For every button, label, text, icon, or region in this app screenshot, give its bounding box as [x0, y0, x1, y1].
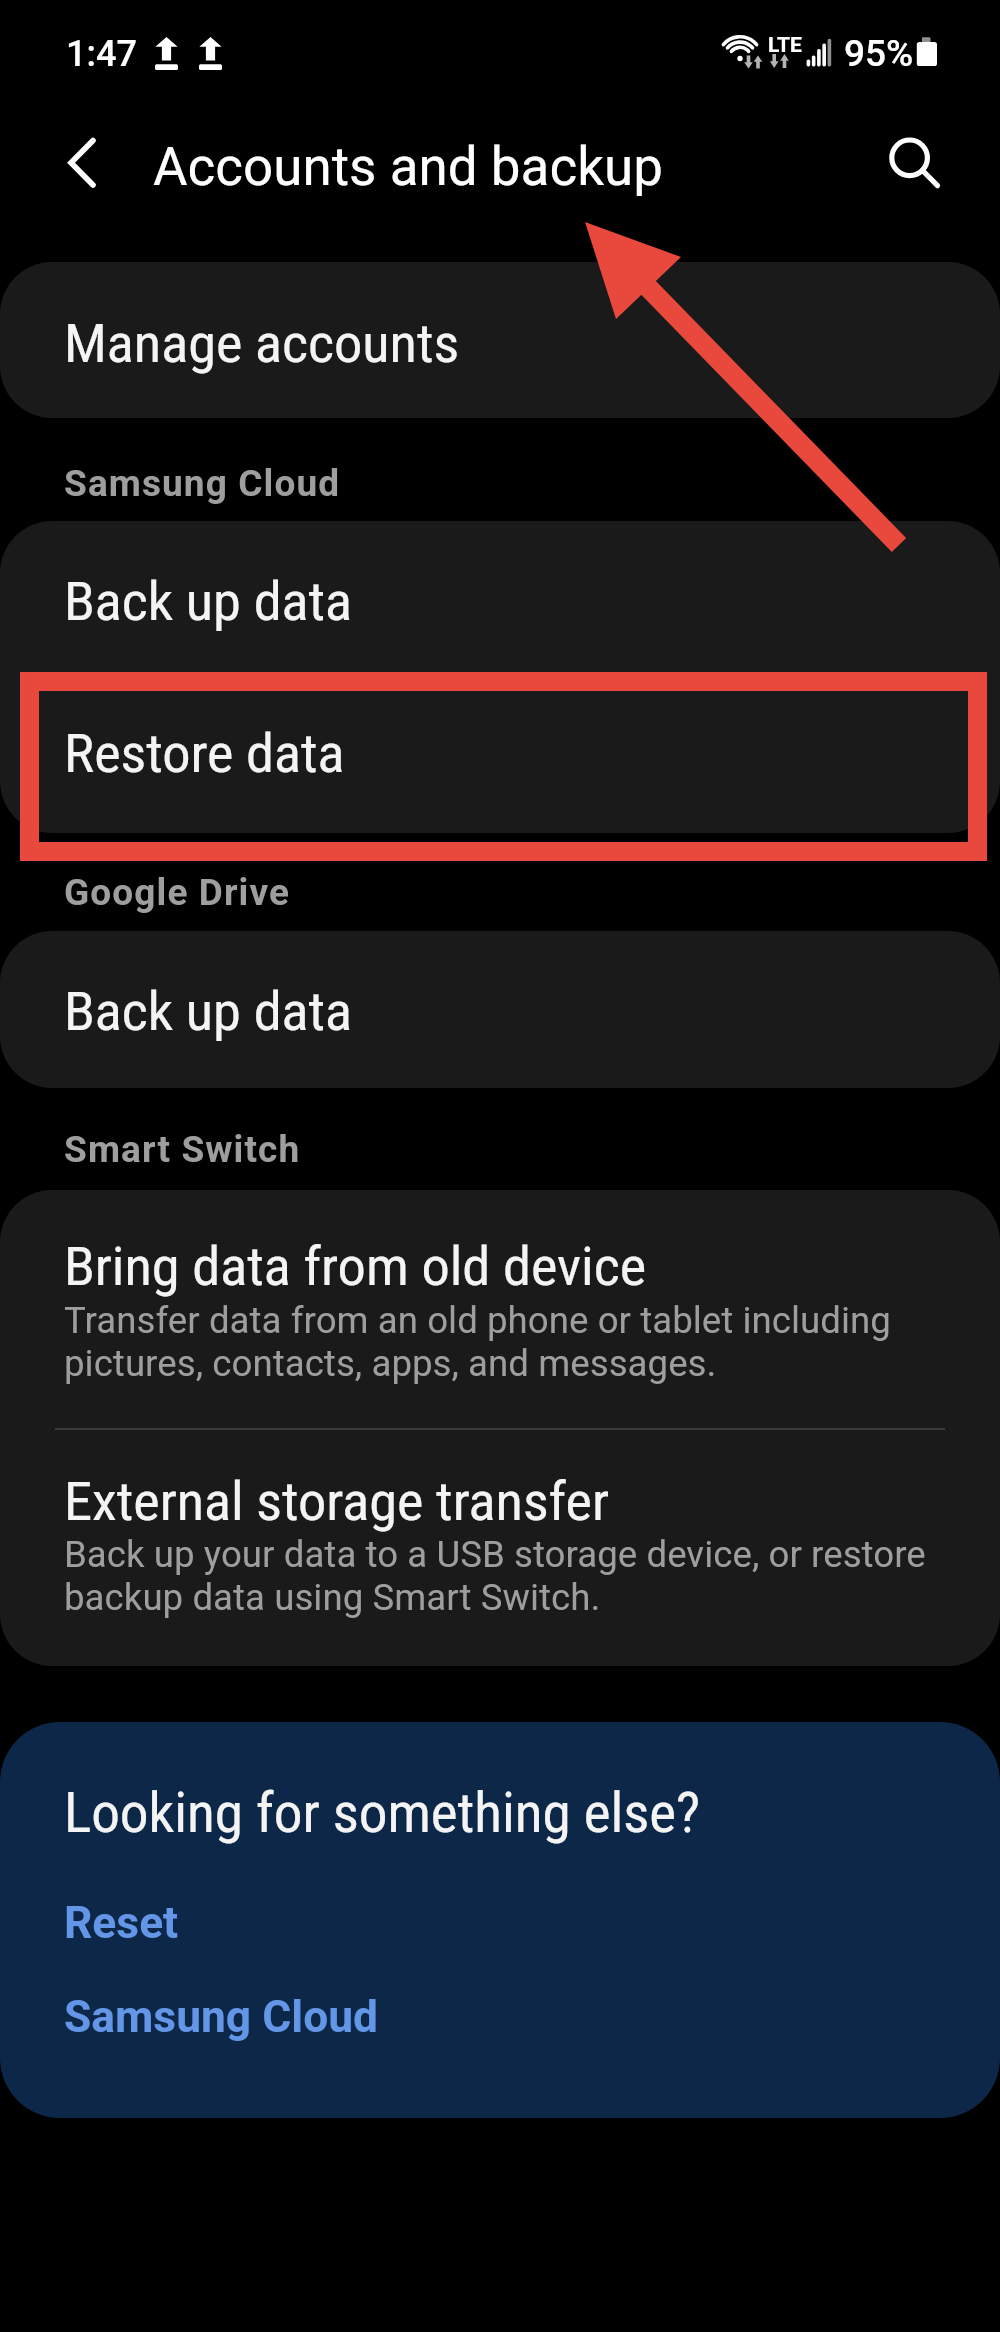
staticText: Accounts and backup	[153, 135, 663, 198]
staticText: Looking for something else?	[64, 1781, 701, 1845]
staticText: 95%	[844, 32, 914, 75]
staticText: Back up your data to a USB storage devic…	[64, 1533, 926, 1619]
button[interactable]: External storage transfer	[0, 1430, 1000, 1666]
staticText: Transfer data from an old phone or table…	[64, 1299, 891, 1385]
staticText: 1:47	[66, 33, 137, 75]
staticText: Back up data	[64, 570, 353, 633]
staticText: Google Drive	[64, 871, 291, 914]
staticText: Back up data	[64, 980, 353, 1043]
staticText: Bring data from old device	[64, 1235, 647, 1298]
staticText: Smart Switch	[64, 1128, 301, 1171]
button[interactable]: Back up data	[0, 521, 1000, 677]
button[interactable]: Manage accounts	[0, 262, 1000, 418]
staticText: External storage transfer	[64, 1470, 609, 1533]
staticText: Samsung Cloud	[64, 1990, 378, 2042]
staticText: Restore data	[64, 722, 345, 785]
staticText: Samsung Cloud	[64, 462, 341, 505]
button[interactable]: Back up data	[0, 931, 1000, 1088]
button[interactable]: Back	[44, 135, 100, 191]
staticText: LTE	[768, 33, 802, 58]
button[interactable]: Restore data	[0, 677, 1000, 833]
staticText: Reset	[64, 1896, 179, 1948]
button[interactable]: Bring data from old device	[0, 1190, 1000, 1429]
staticText: Manage accounts	[64, 312, 460, 375]
button[interactable]: Samsung Cloud	[58, 1992, 418, 2044]
button[interactable]: Search	[882, 129, 940, 187]
button[interactable]: Reset	[58, 1898, 418, 1950]
